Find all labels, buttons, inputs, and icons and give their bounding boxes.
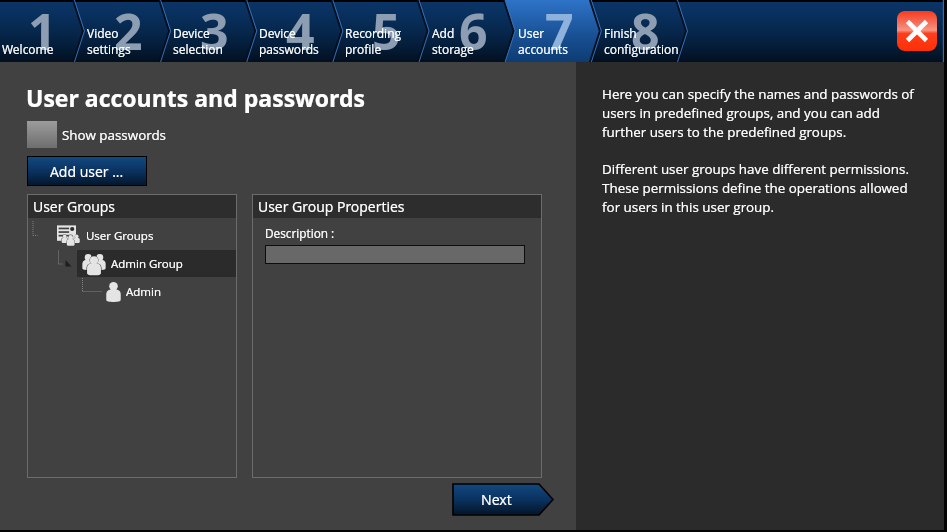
staticText: Show passwords (62, 126, 167, 144)
staticText: Admin (126, 284, 161, 300)
staticText: 3 (200, 0, 229, 59)
staticText: accounts (518, 41, 569, 57)
staticText: Description : (265, 225, 335, 241)
button[interactable]: Add user ... (28, 157, 146, 185)
staticText: settings (87, 41, 131, 57)
staticText: User (518, 25, 545, 41)
button[interactable]: Video (86, 0, 130, 62)
button[interactable]: User Groups (56, 224, 154, 248)
staticText: User accounts and passwords (26, 82, 365, 113)
staticText: storage (432, 41, 474, 57)
button[interactable]: Close (897, 11, 937, 51)
staticText: Add user ... (50, 162, 124, 181)
button[interactable]: Admin Group (77, 250, 236, 277)
staticText: 5 (372, 0, 401, 59)
staticText: profile (345, 41, 382, 57)
staticText: configuration (604, 41, 679, 57)
staticText: 6 (459, 0, 488, 59)
staticText: 7 (545, 0, 574, 59)
staticText: Device (259, 25, 296, 41)
button[interactable]: Device (258, 0, 318, 62)
button[interactable]: Next (453, 484, 553, 515)
button[interactable]: Device (172, 0, 222, 62)
button[interactable]: Show passwords (27, 121, 167, 148)
staticText: Different user groups have different per… (602, 160, 909, 216)
staticText: Finish (604, 25, 637, 41)
staticText: Welcome (2, 41, 54, 57)
button[interactable]: Recording (344, 0, 401, 62)
staticText: passwords (259, 41, 319, 57)
staticText: Add (432, 25, 455, 41)
staticText: 4 (286, 0, 315, 59)
button[interactable]: Admin (105, 281, 161, 303)
button[interactable]: User (517, 0, 568, 62)
staticText: 2 (114, 0, 143, 59)
staticText: Here you can specify the names and passw… (602, 85, 914, 141)
button[interactable]: Finish (603, 0, 678, 62)
staticText: Admin Group (111, 256, 183, 272)
staticText: selection (173, 41, 223, 57)
staticText: User Groups (33, 197, 116, 216)
staticText: User Groups (86, 228, 154, 244)
staticText: Recording (345, 25, 402, 41)
staticText: Next (481, 490, 512, 509)
staticText: 8 (631, 0, 660, 59)
staticText: 1 (28, 0, 57, 59)
staticText: Video (87, 25, 119, 41)
button[interactable]: Welcome (0, 0, 52, 62)
button[interactable]: Add (431, 0, 473, 62)
staticText: User Group Properties (258, 197, 405, 216)
staticText: Device (173, 25, 210, 41)
